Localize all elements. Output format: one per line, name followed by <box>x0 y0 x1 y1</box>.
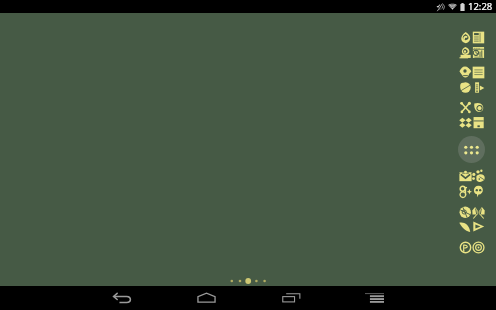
button[interactable]: Camera <box>458 45 473 60</box>
button[interactable]: Music <box>458 219 473 234</box>
button[interactable]: Notes <box>471 65 486 80</box>
button[interactable]: Browser <box>458 205 473 220</box>
button[interactable]: Weather <box>458 30 473 45</box>
button[interactable]: Recents <box>274 286 309 310</box>
button[interactable]: Dropbox <box>458 115 473 130</box>
button[interactable]: Gallery <box>458 80 473 95</box>
staticText: 12:28 <box>468 0 493 13</box>
button[interactable]: Photos app <box>458 65 473 80</box>
button[interactable]: Calendar <box>471 45 486 60</box>
button[interactable]: Menu <box>357 286 392 310</box>
button[interactable]: Files <box>471 115 486 130</box>
button[interactable]: Home <box>189 286 224 310</box>
button[interactable]: Maps <box>471 205 486 220</box>
button[interactable]: Tools <box>458 100 473 115</box>
button[interactable]: Back <box>105 286 140 310</box>
button[interactable]: Gmail <box>458 169 473 184</box>
button[interactable]: Settings <box>458 240 473 255</box>
button[interactable]: Google Plus <box>458 184 473 199</box>
button[interactable]: Play <box>471 219 486 234</box>
button[interactable]: Reader <box>471 80 486 95</box>
button[interactable]: Clock <box>471 240 486 255</box>
button[interactable]: News <box>471 30 486 45</box>
button[interactable]: Hangouts <box>471 184 486 199</box>
button[interactable]: All apps <box>458 136 485 163</box>
button[interactable]: Photos <box>471 169 486 184</box>
button[interactable]: Editor <box>471 100 486 115</box>
